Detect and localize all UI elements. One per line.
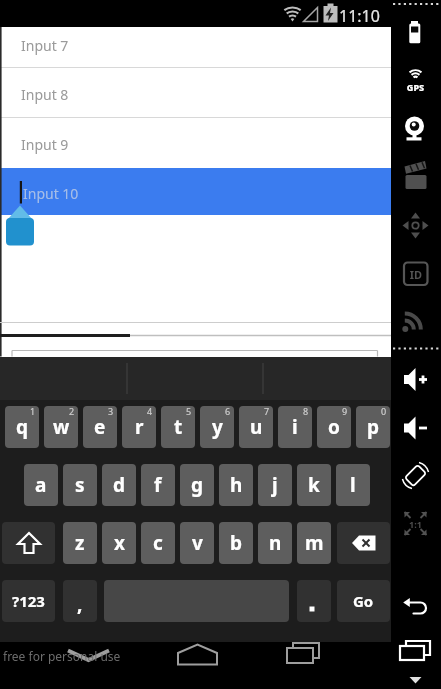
button[interactable] xyxy=(396,362,436,402)
staticText: free for personal use xyxy=(3,648,121,664)
staticText: s xyxy=(75,472,85,498)
button[interactable]: x xyxy=(102,522,136,564)
button[interactable] xyxy=(396,456,436,496)
button[interactable]: n xyxy=(258,522,292,564)
staticText: 1 xyxy=(30,406,36,417)
staticText: 3 xyxy=(108,406,114,417)
staticText: 8 xyxy=(303,406,309,417)
button[interactable]: g xyxy=(180,464,214,506)
staticText: f xyxy=(154,472,162,498)
staticText: ?123 xyxy=(12,591,45,611)
button[interactable] xyxy=(158,642,236,689)
button[interactable]: w xyxy=(44,406,78,448)
button[interactable] xyxy=(297,580,331,622)
button[interactable] xyxy=(396,208,436,248)
staticText: Go xyxy=(353,591,374,611)
button[interactable]: d xyxy=(102,464,136,506)
staticText: 1:1 xyxy=(403,518,428,530)
button[interactable] xyxy=(49,642,127,689)
button[interactable]: q xyxy=(5,406,39,448)
button[interactable] xyxy=(0,27,391,68)
button[interactable]: z xyxy=(63,522,97,564)
staticText: y xyxy=(212,414,223,440)
button[interactable] xyxy=(396,634,436,674)
button[interactable]: e xyxy=(83,406,117,448)
button[interactable]: ?123 xyxy=(2,580,55,622)
staticText: Input 10 xyxy=(23,184,79,203)
button[interactable]: f xyxy=(141,464,175,506)
button[interactable] xyxy=(396,66,436,106)
button[interactable]: l xyxy=(336,464,370,506)
button[interactable] xyxy=(2,522,55,564)
button[interactable]: r xyxy=(122,406,156,448)
staticText: 7 xyxy=(264,406,270,417)
staticText: GPS xyxy=(402,81,429,93)
staticText: j xyxy=(272,472,278,498)
staticText: o xyxy=(328,414,340,440)
staticText: Input 7 xyxy=(21,36,69,55)
staticText: l xyxy=(350,472,356,498)
button[interactable]: a xyxy=(24,464,58,506)
staticText: c xyxy=(153,530,163,556)
button[interactable]: m xyxy=(297,522,331,564)
button[interactable] xyxy=(396,586,436,626)
button[interactable]: k xyxy=(297,464,331,506)
staticText: Input 8 xyxy=(21,85,69,104)
staticText: 0 xyxy=(381,406,387,417)
staticText: 9 xyxy=(342,406,348,417)
staticText: ID xyxy=(404,267,428,282)
staticText: Input 9 xyxy=(21,135,69,154)
button[interactable]: , xyxy=(63,580,97,622)
button[interactable]: i xyxy=(278,406,312,448)
staticText: z xyxy=(75,530,85,556)
staticText: w xyxy=(53,414,70,440)
button[interactable] xyxy=(0,168,391,215)
staticText: d xyxy=(113,472,126,498)
button[interactable]: u xyxy=(239,406,273,448)
staticText: m xyxy=(305,530,324,556)
button[interactable]: y xyxy=(200,406,234,448)
staticText: b xyxy=(230,530,243,556)
staticText: t xyxy=(174,414,183,440)
button[interactable]: p xyxy=(356,406,390,448)
staticText: e xyxy=(94,414,106,440)
button[interactable] xyxy=(337,522,390,564)
staticText: , xyxy=(77,591,83,617)
staticText: q xyxy=(16,414,29,440)
button[interactable]: o xyxy=(317,406,351,448)
staticText: h xyxy=(230,472,243,498)
button[interactable] xyxy=(396,302,436,342)
button[interactable] xyxy=(264,642,342,689)
button[interactable] xyxy=(396,411,436,451)
button[interactable]: t xyxy=(161,406,195,448)
button[interactable] xyxy=(396,503,436,543)
button[interactable] xyxy=(0,118,391,168)
staticText: r xyxy=(135,414,144,440)
staticText: a xyxy=(35,472,47,498)
button[interactable] xyxy=(396,18,436,58)
staticText: 2 xyxy=(69,406,75,417)
button[interactable]: Go xyxy=(337,580,390,622)
button[interactable]: s xyxy=(63,464,97,506)
staticText: x xyxy=(114,530,125,556)
button[interactable]: c xyxy=(141,522,175,564)
button[interactable] xyxy=(396,110,436,150)
button[interactable]: b xyxy=(219,522,253,564)
button[interactable] xyxy=(396,256,436,296)
button[interactable] xyxy=(0,68,391,118)
staticText: i xyxy=(292,414,298,440)
staticText: 5 xyxy=(186,406,192,417)
staticText: p xyxy=(367,414,380,440)
staticText: k xyxy=(308,472,320,498)
button[interactable]: v xyxy=(180,522,214,564)
staticText: u xyxy=(250,414,263,440)
staticText: g xyxy=(191,472,204,498)
staticText: 4 xyxy=(147,406,153,417)
button[interactable]: h xyxy=(219,464,253,506)
staticText: v xyxy=(192,530,203,556)
staticText: n xyxy=(269,530,282,556)
staticText: 6 xyxy=(225,406,231,417)
button[interactable] xyxy=(396,160,436,200)
button[interactable]: j xyxy=(258,464,292,506)
